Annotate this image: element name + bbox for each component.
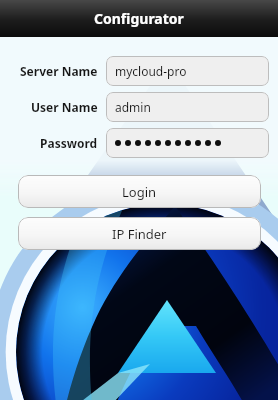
button[interactable]: IP Finder — [18, 217, 261, 250]
staticText: Server Name — [20, 63, 98, 79]
button[interactable]: admin — [106, 92, 269, 122]
staticText: Password — [40, 135, 98, 151]
staticText: admin — [115, 99, 151, 115]
staticText: Configurator — [94, 9, 184, 28]
staticText: User Name — [31, 99, 98, 115]
staticText: Login — [122, 183, 157, 201]
button[interactable]: Login — [18, 175, 261, 208]
staticText: IP Finder — [112, 225, 167, 243]
staticText: mycloud-pro — [115, 63, 187, 79]
button[interactable]: mycloud-pro — [106, 56, 269, 86]
button[interactable] — [106, 128, 269, 158]
